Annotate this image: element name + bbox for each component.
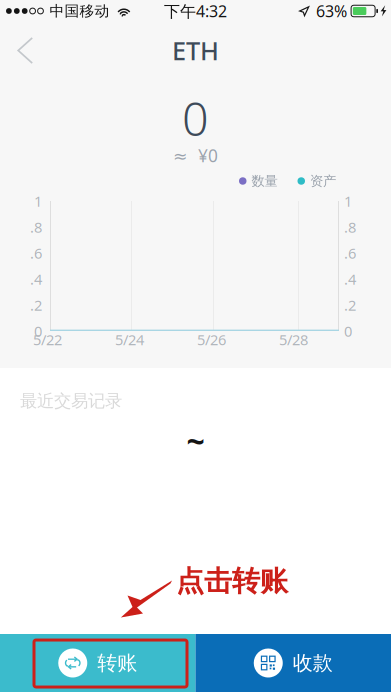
staticText: 63%: [316, 0, 347, 22]
staticText: .6: [30, 243, 42, 263]
staticText: 中国移动: [49, 2, 109, 20]
staticText: 5/22: [33, 330, 62, 349]
staticText: 0: [34, 321, 42, 341]
staticText: 5/24: [115, 330, 144, 349]
staticText: .2: [344, 295, 356, 315]
staticText: 资产: [310, 173, 336, 189]
staticText: 下午4:32: [164, 0, 227, 22]
button[interactable]: 收款: [195, 634, 391, 692]
staticText: 数量: [251, 173, 277, 189]
staticText: 5/28: [279, 330, 308, 349]
staticText: 转账: [97, 651, 137, 675]
staticText: 0: [344, 321, 352, 341]
staticText: 0: [182, 87, 209, 149]
staticText: .4: [30, 269, 42, 289]
staticText: .2: [30, 295, 42, 315]
staticText: ≈ ¥0: [173, 144, 218, 167]
button[interactable]: 转账: [0, 634, 195, 692]
staticText: 1: [34, 191, 42, 211]
staticText: .6: [344, 243, 356, 263]
staticText: .8: [344, 217, 356, 237]
staticText: 点击转账: [176, 564, 288, 598]
staticText: .4: [344, 269, 356, 289]
staticText: ~: [186, 420, 204, 462]
staticText: ETH: [172, 34, 219, 67]
staticText: 1: [344, 191, 352, 211]
staticText: 最近交易记录: [20, 390, 122, 412]
staticText: 收款: [293, 651, 333, 675]
button[interactable]: Back: [0, 22, 56, 79]
staticText: 5/26: [197, 330, 226, 349]
staticText: .8: [30, 217, 42, 237]
